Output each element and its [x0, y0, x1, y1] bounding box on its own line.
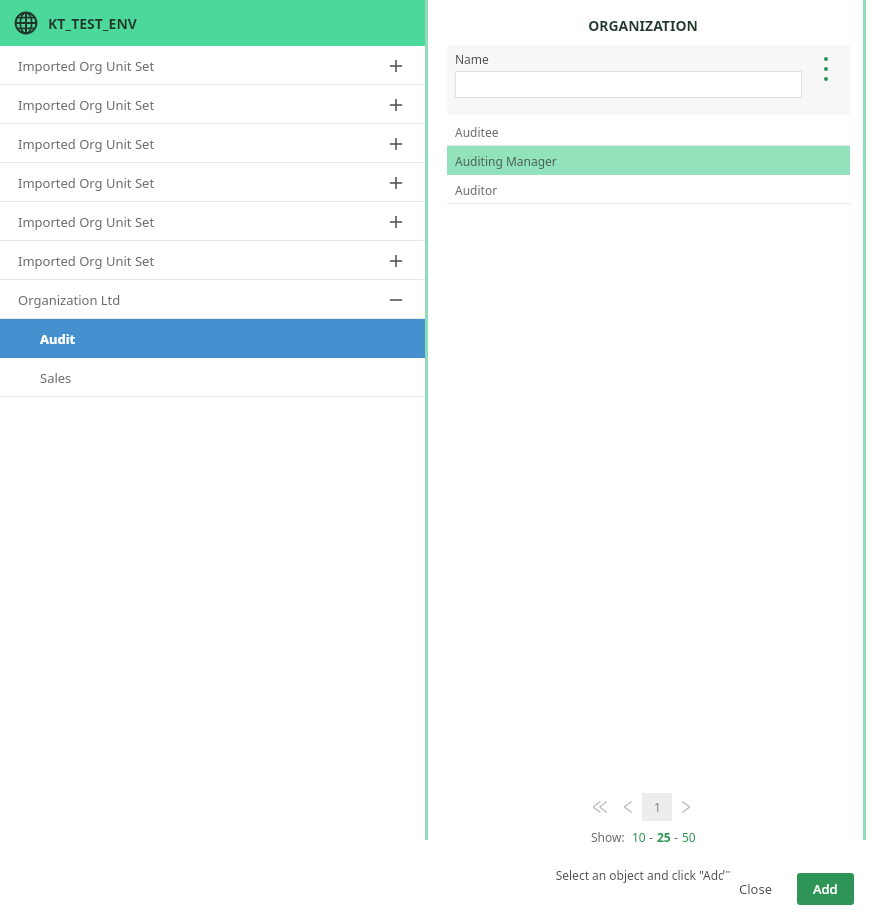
button[interactable]: More options: [802, 45, 850, 115]
button[interactable]: Expand: [385, 94, 407, 116]
button[interactable]: Expand: [385, 211, 407, 233]
button[interactable]: Add: [797, 873, 854, 905]
button[interactable]: Expand: [385, 172, 407, 194]
button[interactable]: Collapse: [385, 289, 407, 311]
button[interactable]: 50: [682, 829, 696, 845]
button[interactable]: Organization Ltd: [0, 280, 425, 319]
staticText: KT_TEST_ENV: [48, 14, 137, 33]
staticText: Audit: [40, 330, 407, 348]
staticText: Imported Org Unit Set: [18, 252, 385, 270]
staticText: 50: [682, 829, 696, 845]
button[interactable]: Imported Org Unit Set: [0, 46, 425, 85]
button[interactable]: Next page: [672, 793, 700, 821]
button[interactable]: Expand: [385, 55, 407, 77]
button[interactable]: 25: [657, 829, 671, 845]
staticText: Sales: [40, 369, 407, 387]
staticText: 1: [654, 799, 661, 815]
button[interactable]: Auditor: [447, 175, 850, 204]
button[interactable]: Auditee: [447, 117, 850, 146]
staticText: 25: [657, 829, 671, 845]
staticText: Imported Org Unit Set: [18, 57, 385, 75]
staticText: Organization Ltd: [18, 291, 385, 309]
button[interactable]: Close: [723, 873, 788, 905]
staticText: Name: [455, 51, 489, 67]
staticText: -: [646, 829, 657, 845]
button[interactable]: Expand: [385, 133, 407, 155]
staticText: Imported Org Unit Set: [18, 174, 385, 192]
button[interactable]: [455, 71, 802, 98]
staticText: Show:: [591, 829, 625, 845]
button[interactable]: 1: [642, 793, 672, 821]
button[interactable]: 10: [632, 829, 646, 845]
button[interactable]: Audit: [0, 319, 425, 358]
button[interactable]: Imported Org Unit Set: [0, 241, 425, 280]
staticText: Imported Org Unit Set: [18, 135, 385, 153]
button[interactable]: First page: [586, 793, 614, 821]
staticText: Add: [813, 880, 838, 898]
staticText: ORGANIZATION: [428, 16, 858, 35]
button[interactable]: Expand: [385, 250, 407, 272]
button[interactable]: Imported Org Unit Set: [0, 124, 425, 163]
staticText: Imported Org Unit Set: [18, 213, 385, 231]
staticText: Close: [739, 880, 772, 898]
button[interactable]: Imported Org Unit Set: [0, 85, 425, 124]
staticText: 10: [632, 829, 646, 845]
button[interactable]: Imported Org Unit Set: [0, 163, 425, 202]
staticText: Auditee: [455, 124, 499, 140]
staticText: Select an object and click "Add": [428, 867, 858, 883]
button[interactable]: Previous page: [614, 793, 642, 821]
button[interactable]: Auditing Manager: [447, 146, 850, 175]
button[interactable]: Imported Org Unit Set: [0, 202, 425, 241]
button[interactable]: Sales: [0, 358, 425, 397]
staticText: Auditor: [455, 182, 498, 198]
staticText: Imported Org Unit Set: [18, 96, 385, 114]
staticText: -: [671, 829, 682, 845]
button[interactable]: KT_TEST_ENV: [0, 0, 425, 46]
staticText: Auditing Manager: [455, 153, 557, 169]
